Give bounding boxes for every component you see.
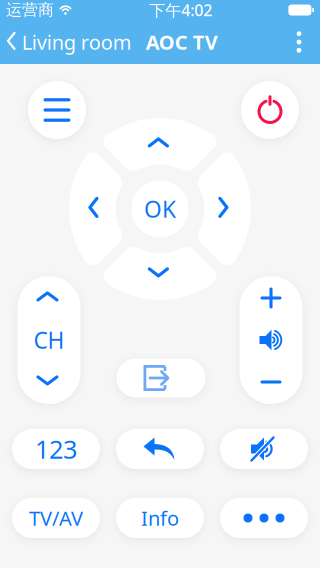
staticText: OK [144, 194, 176, 224]
button[interactable]: Down [69, 118, 251, 300]
button[interactable]: Back [116, 429, 204, 469]
button[interactable]: Volume down [239, 360, 302, 404]
button[interactable]: Menu [28, 81, 86, 139]
staticText: 运营商 [6, 0, 54, 20]
button[interactable] [116, 498, 204, 538]
button[interactable]: Channel up [17, 276, 80, 320]
staticText: CH [33, 325, 64, 355]
button[interactable]: More options [278, 20, 320, 64]
button[interactable]: Left [69, 118, 251, 300]
button[interactable]: Mute [220, 429, 308, 469]
button[interactable] [12, 498, 100, 538]
staticText: Info [141, 505, 179, 531]
button[interactable]: Up [69, 118, 251, 300]
button[interactable]: Living room [0, 20, 136, 64]
button[interactable] [12, 429, 100, 469]
staticText: TV/AV [29, 505, 83, 531]
button[interactable]: Channel down [17, 360, 80, 404]
staticText: 下午4:02 [149, 0, 212, 21]
button[interactable]: OK [131, 180, 188, 237]
button[interactable]: Volume up [239, 276, 302, 320]
staticText: Living room [22, 29, 132, 55]
button[interactable]: More [220, 498, 308, 538]
button[interactable]: Input source [116, 358, 205, 397]
staticText: 123 [35, 432, 77, 466]
button[interactable]: Right [69, 118, 251, 300]
staticText: AOC TV [146, 29, 218, 55]
button[interactable]: Power [241, 81, 299, 139]
